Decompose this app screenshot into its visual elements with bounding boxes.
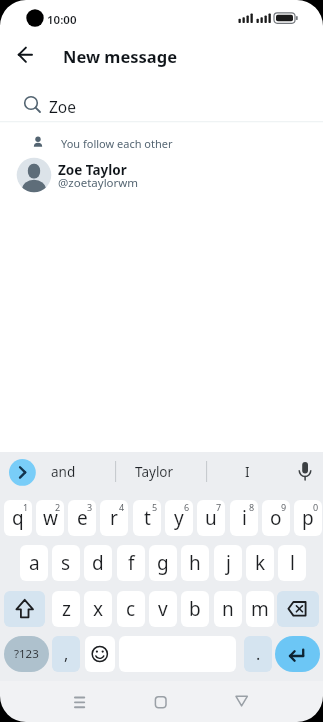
button[interactable]: s: [52, 545, 80, 581]
staticText: New message: [63, 45, 178, 67]
button[interactable]: [0, 84, 323, 121]
staticText: 9: [281, 501, 287, 513]
staticText: .: [256, 643, 261, 665]
button[interactable]: [275, 636, 320, 672]
button[interactable]: p: [294, 500, 322, 536]
button[interactable]: u: [197, 500, 225, 536]
staticText: u: [205, 505, 217, 531]
staticText: 5: [152, 501, 158, 513]
button[interactable]: [0, 153, 323, 197]
button[interactable]: k: [246, 545, 274, 581]
staticText: 10:00: [47, 12, 77, 28]
staticText: I: [245, 463, 250, 481]
button[interactable]: f: [117, 545, 145, 581]
button[interactable]: o: [262, 500, 290, 536]
staticText: w: [43, 505, 58, 531]
staticText: l: [290, 550, 295, 576]
staticText: k: [255, 550, 266, 576]
button[interactable]: h: [181, 545, 209, 581]
staticText: f: [128, 550, 135, 576]
button[interactable]: r: [100, 500, 128, 536]
staticText: v: [158, 596, 168, 622]
staticText: Zoe: [49, 96, 76, 117]
staticText: r: [110, 505, 118, 531]
button[interactable]: c: [117, 591, 145, 627]
button[interactable]: [9, 459, 36, 486]
button[interactable]: d: [84, 545, 112, 581]
staticText: q: [12, 505, 24, 531]
button[interactable]: [277, 591, 319, 627]
staticText: 7: [216, 501, 222, 513]
button[interactable]: [58, 683, 102, 721]
staticText: c: [126, 596, 136, 622]
staticText: Zoe Taylor: [58, 161, 127, 179]
staticText: m: [251, 596, 269, 622]
button[interactable]: a: [20, 545, 48, 581]
staticText: j: [226, 550, 231, 576]
staticText: 3: [87, 501, 93, 513]
button[interactable]: t: [133, 500, 161, 536]
staticText: i: [242, 505, 247, 531]
staticText: 6: [184, 501, 190, 513]
staticText: b: [189, 596, 201, 622]
button[interactable]: [139, 683, 183, 721]
staticText: a: [29, 550, 40, 576]
staticText: s: [61, 550, 71, 576]
button[interactable]: m: [246, 591, 274, 627]
button[interactable]: v: [149, 591, 177, 627]
button[interactable]: q: [4, 500, 32, 536]
button[interactable]: i: [230, 500, 258, 536]
staticText: @zoetaylorwm: [58, 175, 139, 191]
button[interactable]: ?123: [4, 636, 49, 672]
button[interactable]: [292, 456, 320, 488]
button[interactable]: x: [84, 591, 112, 627]
button[interactable]: n: [214, 591, 242, 627]
staticText: p: [302, 505, 314, 531]
staticText: ,: [64, 643, 69, 665]
staticText: g: [157, 550, 169, 576]
staticText: 4: [119, 501, 125, 513]
staticText: t: [144, 505, 151, 531]
button[interactable]: b: [181, 591, 209, 627]
button[interactable]: [219, 683, 263, 721]
staticText: You follow each other: [61, 136, 173, 151]
staticText: e: [77, 505, 88, 531]
button[interactable]: [8, 34, 50, 76]
button[interactable]: [85, 636, 115, 672]
staticText: y: [174, 505, 184, 531]
staticText: Taylor: [135, 463, 174, 481]
button[interactable]: l: [278, 545, 306, 581]
button[interactable]: [40, 456, 110, 488]
staticText: h: [189, 550, 201, 576]
staticText: 2: [55, 501, 61, 513]
button[interactable]: j: [214, 545, 242, 581]
button[interactable]: y: [165, 500, 193, 536]
button[interactable]: [215, 456, 277, 488]
button[interactable]: z: [52, 591, 80, 627]
button[interactable]: g: [149, 545, 177, 581]
staticText: 1: [23, 501, 29, 513]
staticText: and: [51, 463, 76, 481]
staticText: 8: [249, 501, 255, 513]
button[interactable]: e: [68, 500, 96, 536]
staticText: o: [270, 505, 282, 531]
staticText: x: [93, 596, 104, 622]
staticText: d: [92, 550, 104, 576]
button[interactable]: w: [36, 500, 64, 536]
staticText: 0: [313, 501, 319, 513]
button[interactable]: [120, 456, 200, 488]
staticText: z: [62, 596, 71, 622]
staticText: ?123: [14, 646, 39, 662]
button[interactable]: .: [244, 636, 272, 672]
button[interactable]: ,: [52, 636, 80, 672]
button[interactable]: [4, 591, 45, 627]
staticText: n: [222, 596, 234, 622]
